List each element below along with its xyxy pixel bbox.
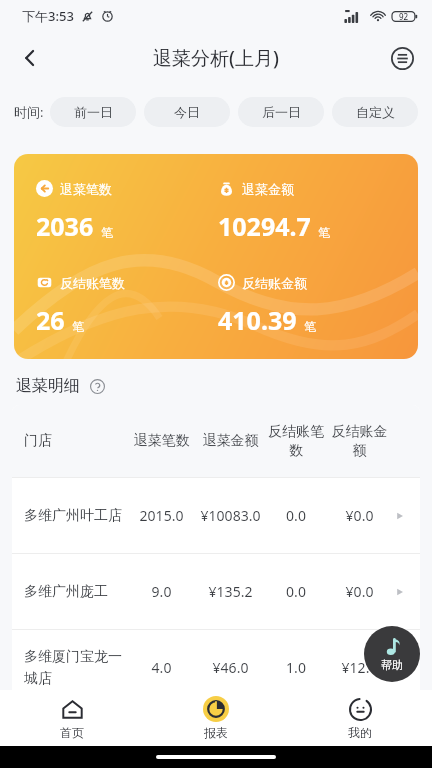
staticText: 今日 — [174, 104, 200, 120]
button[interactable]: 多维广州叶工店 — [12, 478, 420, 553]
staticText: ¥135.2 — [196, 582, 265, 601]
staticText: 下午3:53 — [22, 7, 74, 25]
staticText: 9.0 — [127, 582, 196, 601]
staticText: ¥0.0 — [327, 506, 392, 525]
staticText: 多维广州叶工店 — [24, 507, 127, 525]
staticText: 首页 — [60, 725, 84, 740]
staticText: 前一日 — [74, 104, 113, 120]
staticText: 反结账笔数 — [60, 275, 125, 291]
button[interactable]: 后一日 — [238, 97, 324, 127]
staticText: 多维厦门宝龙一城店 — [24, 648, 127, 687]
staticText: ¥0.0 — [327, 582, 392, 601]
button[interactable]: 首页 — [0, 690, 144, 746]
staticText: 多维广州庞工 — [24, 583, 127, 601]
staticText: 反结账金额 — [242, 275, 307, 291]
staticText: 笔 — [318, 225, 330, 240]
staticText: 时间: — [14, 103, 44, 121]
button[interactable]: 前一日 — [50, 97, 136, 127]
staticText: 退菜笔数 — [60, 181, 112, 197]
button[interactable]: 菜单 — [382, 38, 422, 78]
staticText: 26 — [36, 303, 65, 337]
staticText: ¥46.0 — [196, 658, 265, 677]
staticText: 0.0 — [265, 582, 327, 601]
staticText: ¥10083.0 — [196, 506, 265, 525]
staticText: 4.0 — [127, 658, 196, 677]
staticText: 反结账金额 — [327, 423, 392, 459]
staticText: 门店 — [24, 432, 127, 450]
staticText: 1.0 — [265, 658, 327, 677]
staticText: 92 — [399, 11, 409, 22]
staticText: 帮助 — [381, 658, 403, 672]
staticText: 2036 — [36, 209, 94, 243]
staticText: 笔 — [101, 225, 113, 240]
staticText: 笔 — [72, 319, 84, 334]
staticText: 退菜金额 — [196, 432, 265, 450]
staticText: 退菜明细 — [16, 376, 80, 396]
button[interactable]: 今日 — [144, 97, 230, 127]
staticText: 退菜分析(上月) — [153, 45, 279, 71]
staticText: 退菜金额 — [242, 181, 294, 197]
staticText: 10294.7 — [218, 209, 311, 243]
button[interactable]: 说明 — [86, 375, 108, 397]
button[interactable]: 返回 — [8, 36, 52, 80]
button[interactable]: 我的 — [288, 690, 432, 746]
staticText: 自定义 — [356, 104, 395, 120]
staticText: 笔 — [304, 319, 316, 334]
staticText: 410.39 — [218, 303, 297, 337]
button[interactable]: 多维厦门宝龙一城店 — [12, 630, 420, 705]
button[interactable]: 多维广州庞工 — [12, 554, 420, 629]
staticText: 0.0 — [265, 506, 327, 525]
staticText: 报表 — [204, 725, 228, 740]
staticText: 后一日 — [262, 104, 301, 120]
staticText: ¥12.0 — [327, 658, 392, 677]
button[interactable]: 退菜笔数 — [14, 154, 418, 359]
staticText: 2015.0 — [127, 506, 196, 525]
staticText: 退菜笔数 — [127, 432, 196, 450]
button[interactable]: 自定义 — [332, 97, 418, 127]
staticText: 我的 — [348, 725, 372, 740]
button[interactable]: 报表 — [144, 690, 288, 746]
button[interactable]: 帮助 — [364, 626, 420, 682]
staticText: 反结账笔数 — [265, 423, 327, 459]
